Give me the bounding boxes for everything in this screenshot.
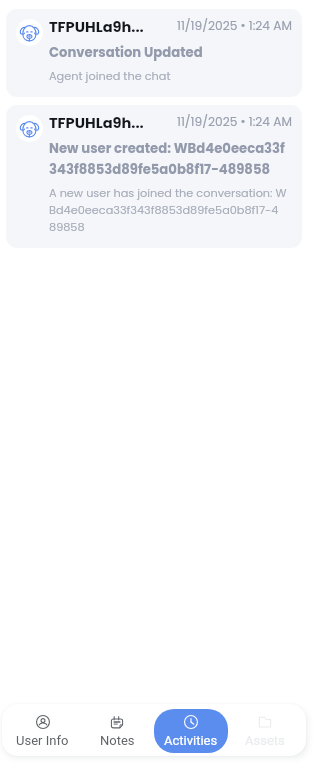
button[interactable]: Notes xyxy=(80,709,154,753)
staticText: Agent joined the chat xyxy=(49,68,171,84)
button[interactable]: Activities xyxy=(154,709,228,753)
button[interactable]: TFPUHLa9h... xyxy=(6,9,302,97)
staticText: 89858 xyxy=(49,219,85,235)
other: Assets xyxy=(258,715,272,729)
other: Activities xyxy=(184,715,198,729)
staticText: A new user has joined the conversation: … xyxy=(49,185,287,201)
button[interactable]: Assets xyxy=(228,709,302,753)
staticText: Bd4e0eeca33f343f8853d89fe5a0b8f17-4 xyxy=(49,202,279,218)
other: Notes xyxy=(110,715,124,729)
staticText: 11/19/2025 • 1:24 AM xyxy=(177,17,292,34)
staticText: 343f8853d89fe5a0b8f17-489858 xyxy=(49,160,271,178)
staticText: Assets xyxy=(245,733,285,748)
staticText: Conversation Updated xyxy=(49,43,203,61)
staticText: 11/19/2025 • 1:24 AM xyxy=(177,113,292,130)
staticText: TFPUHLa9h... xyxy=(49,17,144,37)
staticText: TFPUHLa9h... xyxy=(49,113,144,133)
staticText: Activities xyxy=(164,733,218,748)
button[interactable]: TFPUHLa9h... xyxy=(6,105,302,248)
staticText: Notes xyxy=(100,733,135,748)
other: User Info xyxy=(36,715,50,729)
button[interactable]: User Info xyxy=(5,709,80,753)
staticText: New user created: WBd4e0eeca33f xyxy=(49,139,285,157)
staticText: User Info xyxy=(16,733,69,748)
